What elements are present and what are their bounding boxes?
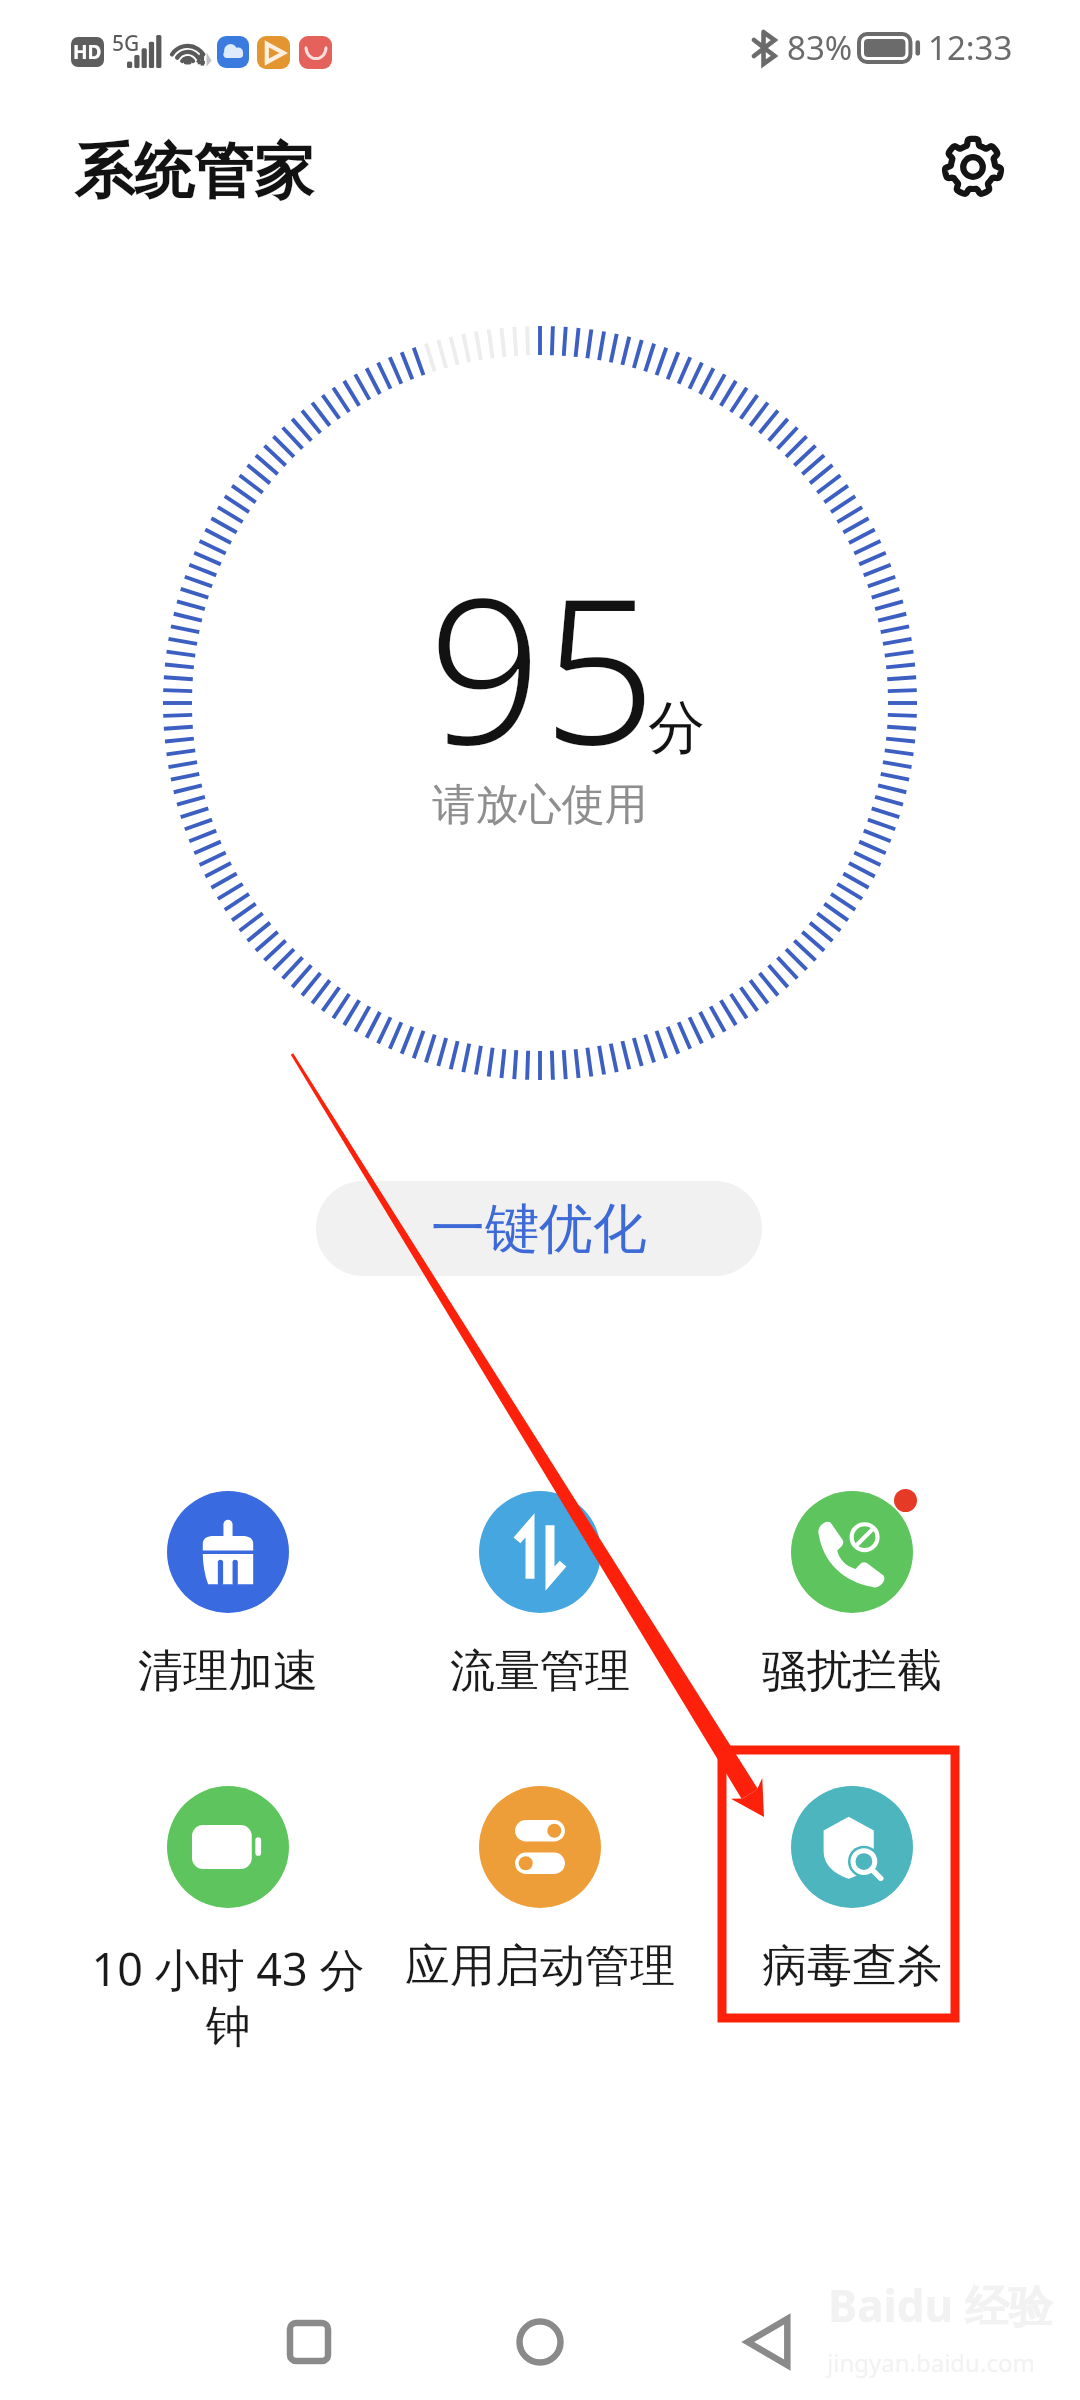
button[interactable]: 流量管理 — [384, 1491, 696, 1700]
button[interactable]: Home — [480, 2282, 600, 2400]
staticText: 5G — [112, 29, 140, 58]
staticText: 应用启动管理 — [400, 1938, 680, 1995]
staticText: 病毒查杀 — [712, 1938, 992, 1995]
button[interactable]: 清理加速 — [72, 1491, 384, 1700]
button[interactable]: 一键优化 — [316, 1181, 762, 1276]
button[interactable]: Recents — [249, 2282, 369, 2400]
staticText: HD — [73, 39, 102, 65]
staticText: 流量管理 — [400, 1643, 680, 1700]
staticText: 请放心使用 — [160, 778, 920, 832]
button[interactable]: 10 小时 43 分钟 — [72, 1786, 384, 2055]
staticText: Baidu 经验 — [828, 2275, 1053, 2335]
button[interactable]: Settings — [928, 122, 1018, 212]
staticText: 系统管家 — [74, 134, 314, 210]
staticText: jingyan.baidu.com — [827, 2346, 1035, 2379]
staticText: 95 — [428, 530, 657, 802]
staticText: 清理加速 — [88, 1643, 368, 1700]
button[interactable]: 病毒查杀 — [696, 1786, 1008, 1995]
button[interactable]: Back — [708, 2282, 828, 2400]
staticText: 分 — [648, 692, 705, 764]
staticText: 一键优化 — [431, 1195, 647, 1263]
staticText: 83% — [787, 25, 853, 70]
button[interactable]: 应用启动管理 — [384, 1786, 696, 1995]
staticText: 10 小时 43 分钟 — [88, 1938, 368, 2055]
button[interactable]: 骚扰拦截 — [696, 1491, 1008, 1700]
staticText: 12:33 — [928, 25, 1013, 70]
staticText: 骚扰拦截 — [712, 1643, 992, 1700]
